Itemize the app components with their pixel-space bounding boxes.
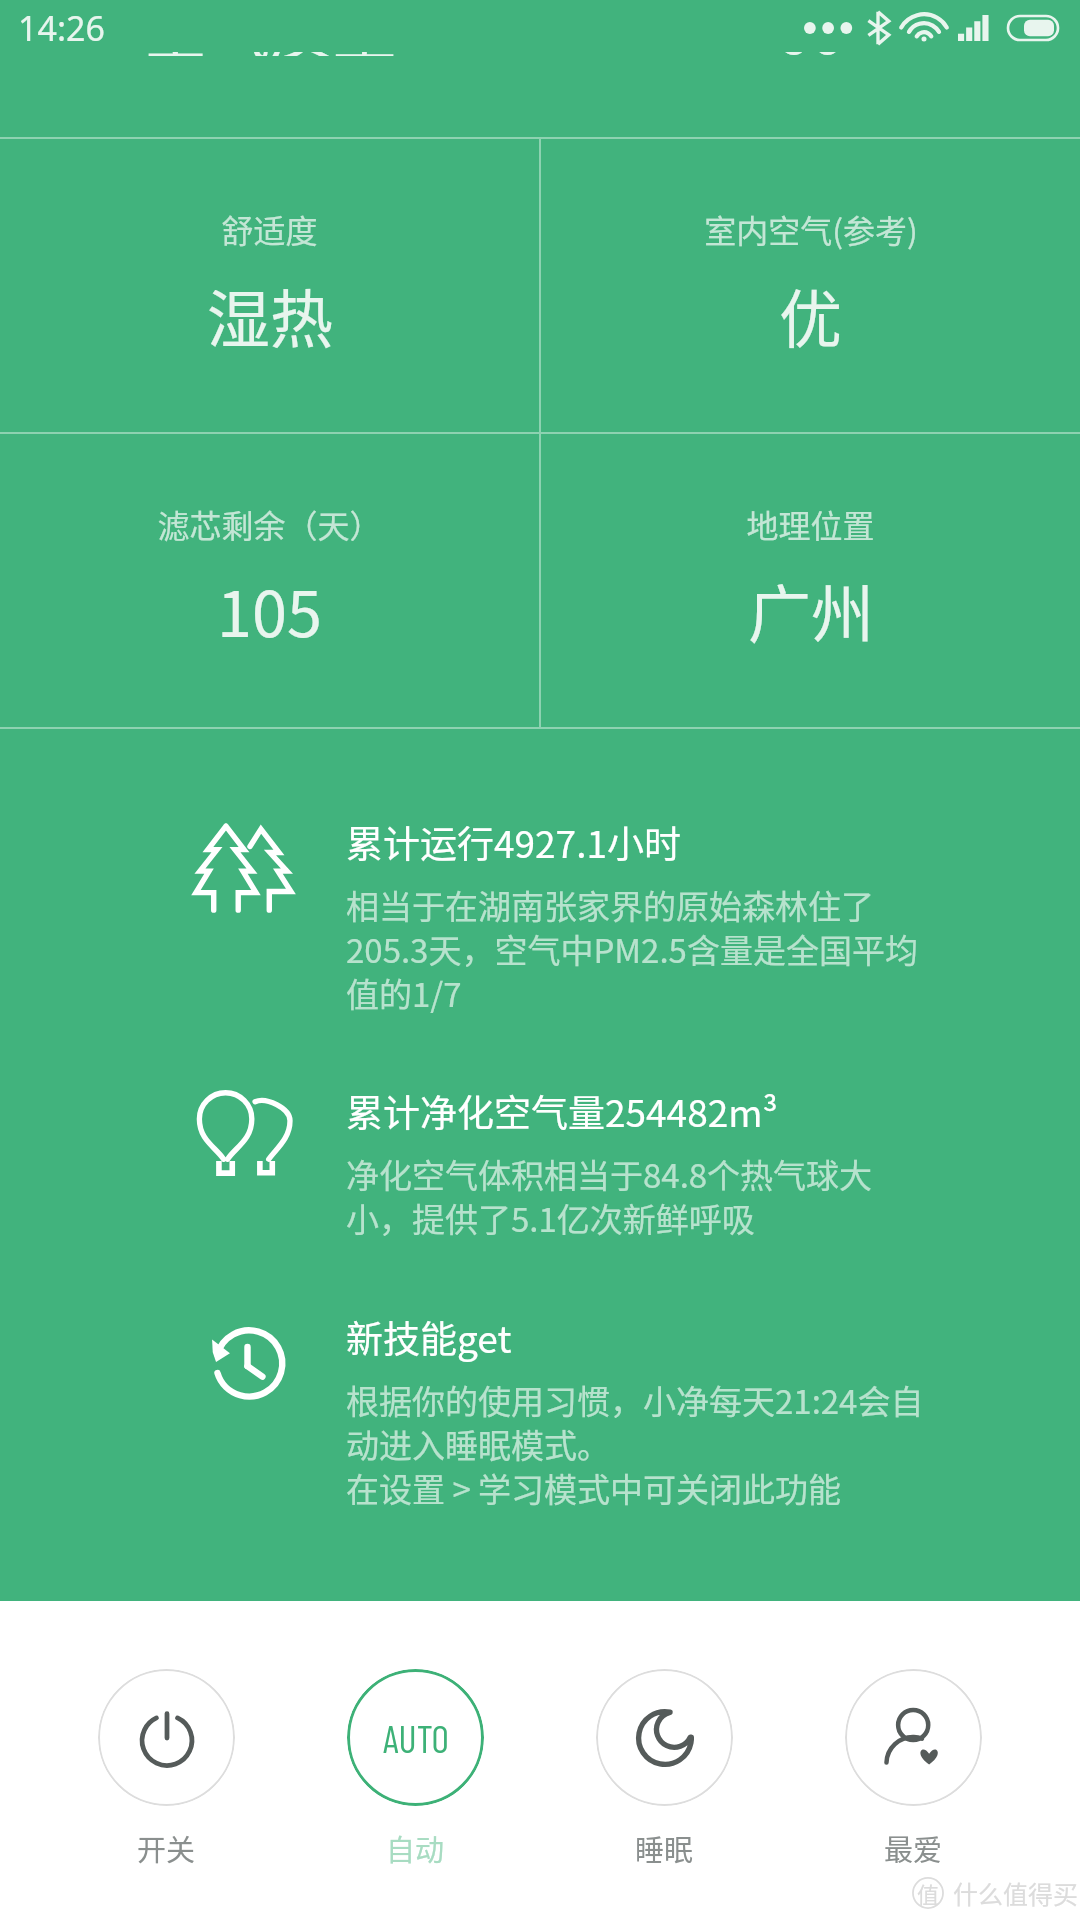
staticText: 湿热: [207, 269, 333, 360]
staticText: 相当于在湖南张家界的原始森林住了 205.3天，空气中PM2.5含量是全国平均 …: [346, 881, 918, 1017]
button[interactable]: Sleep: [540, 1669, 789, 1869]
staticText: 自动: [386, 1827, 445, 1869]
staticText: 地理位置: [746, 501, 875, 547]
staticText: 最爱: [884, 1827, 943, 1869]
staticText: 净化空气体积相当于84.8个热气球大 小，提供了5.1亿次新鲜呼吸: [346, 1150, 873, 1242]
button[interactable]: 滤芯剩余（天）: [0, 434, 539, 727]
staticText: 广州: [748, 564, 874, 655]
staticText: 累计运行4927.1小时: [346, 815, 681, 869]
button[interactable]: Power: [42, 1669, 291, 1869]
staticText: 值: [917, 1877, 940, 1909]
staticText: AUTO: [383, 1715, 449, 1761]
button[interactable]: 新技能get: [0, 1310, 1080, 1512]
staticText: 累计净化空气量254482m³: [346, 1084, 778, 1138]
staticText: 空气质量: [144, 52, 396, 56]
staticText: 新技能get: [346, 1310, 512, 1364]
staticText: 优: [779, 269, 842, 360]
button[interactable]: 地理位置: [541, 434, 1080, 727]
button[interactable]: Favorite: [789, 1669, 1038, 1869]
staticText: 舒适度: [221, 206, 318, 252]
other: Power: [139, 1710, 195, 1766]
staticText: 60: [775, 52, 845, 56]
staticText: 室内空气(参考): [704, 206, 918, 252]
staticText: 根据你的使用习惯，小净每天21:24会自 动进入睡眠模式。 在设置 > 学习模式…: [346, 1376, 924, 1512]
staticText: 滤芯剩余（天）: [157, 501, 382, 547]
staticText: 什么值得买: [953, 1875, 1079, 1911]
button[interactable]: Auto mode: [291, 1669, 540, 1869]
staticText: 105: [217, 564, 322, 655]
staticText: 14:26: [18, 5, 105, 51]
other: Auto mode: [383, 1715, 449, 1761]
button[interactable]: 室内空气(参考): [541, 139, 1080, 432]
other: Favorite: [887, 1711, 940, 1764]
other: Sleep: [636, 1709, 694, 1767]
button[interactable]: 累计净化空气量254482m³: [0, 1084, 1080, 1242]
staticText: 开关: [137, 1827, 196, 1869]
button[interactable]: 累计运行4927.1小时: [0, 815, 1080, 1017]
staticText: 睡眠: [635, 1827, 694, 1869]
button[interactable]: 舒适度: [0, 139, 539, 432]
